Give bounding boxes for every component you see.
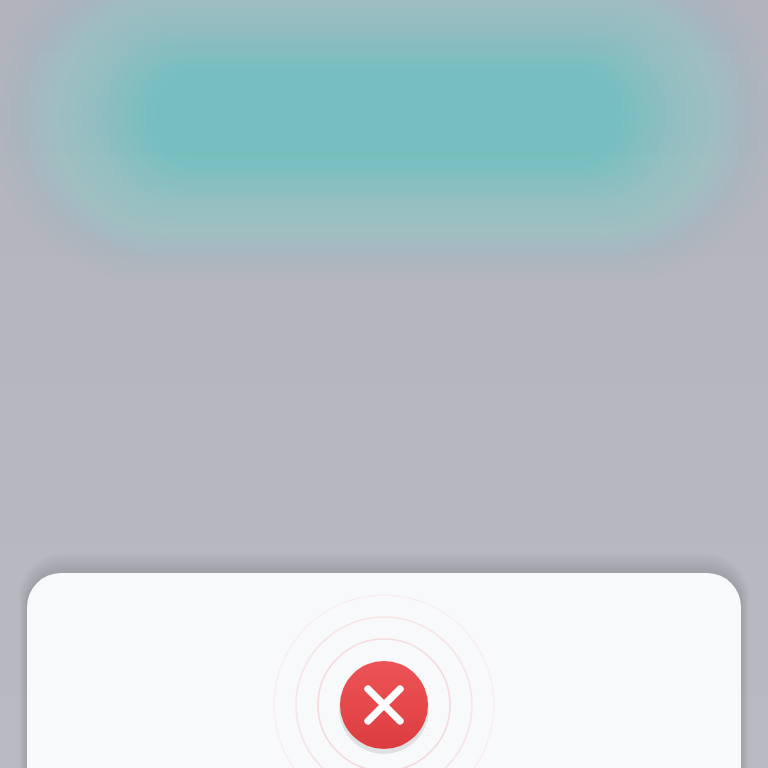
button[interactable]: Decline	[340, 661, 428, 749]
